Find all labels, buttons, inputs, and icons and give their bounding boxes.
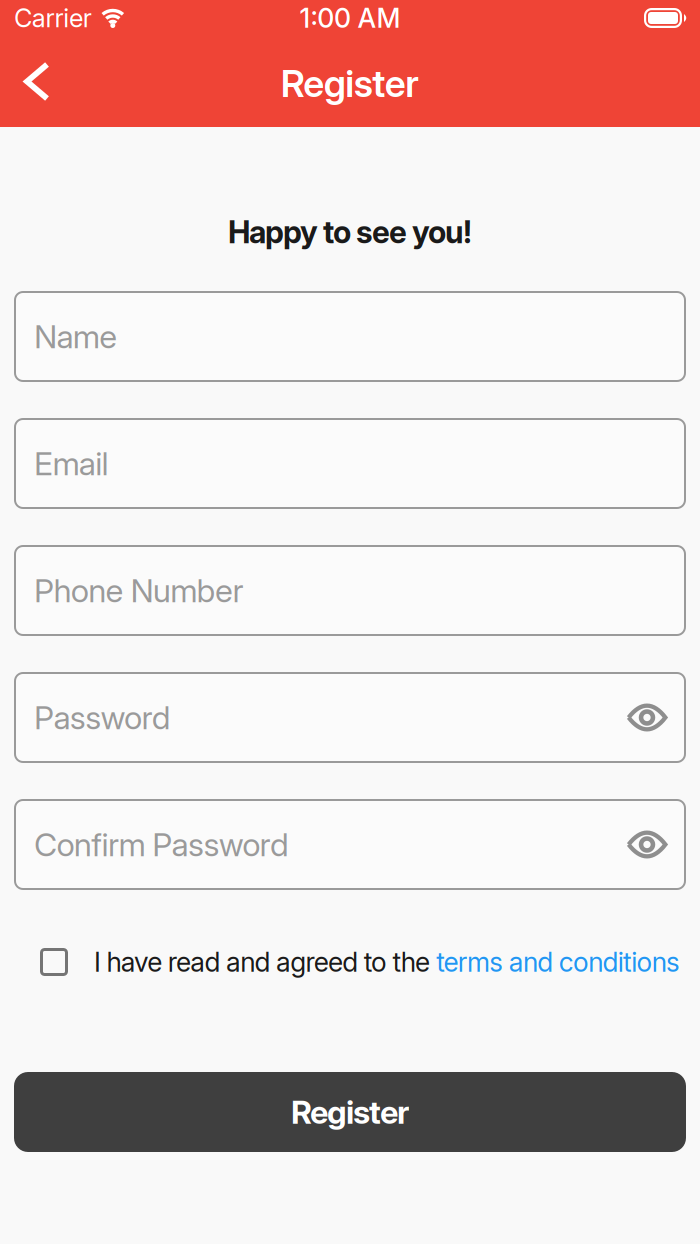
button[interactable]: Register bbox=[14, 1072, 686, 1152]
button[interactable]: Back bbox=[0, 44, 67, 122]
staticText: Register bbox=[281, 61, 419, 105]
staticText: Confirm Password bbox=[34, 826, 289, 863]
button[interactable]: Show password bbox=[627, 831, 667, 858]
button[interactable]: Show password bbox=[627, 704, 667, 731]
staticText: terms and conditions bbox=[436, 946, 680, 978]
button[interactable]: terms and conditions bbox=[436, 946, 680, 978]
staticText: Happy to see you! bbox=[228, 214, 472, 250]
button[interactable]: I have read and agreed to the terms and … bbox=[40, 948, 68, 976]
staticText: Name bbox=[34, 318, 117, 355]
staticText: Carrier bbox=[14, 3, 92, 33]
staticText: Password bbox=[34, 699, 171, 736]
staticText: Phone Number bbox=[34, 572, 243, 609]
staticText: I have read and agreed to the bbox=[94, 946, 436, 978]
staticText: Register bbox=[291, 1093, 409, 1131]
staticText: Email bbox=[34, 445, 109, 482]
staticText: 1:00 AM bbox=[300, 2, 400, 34]
